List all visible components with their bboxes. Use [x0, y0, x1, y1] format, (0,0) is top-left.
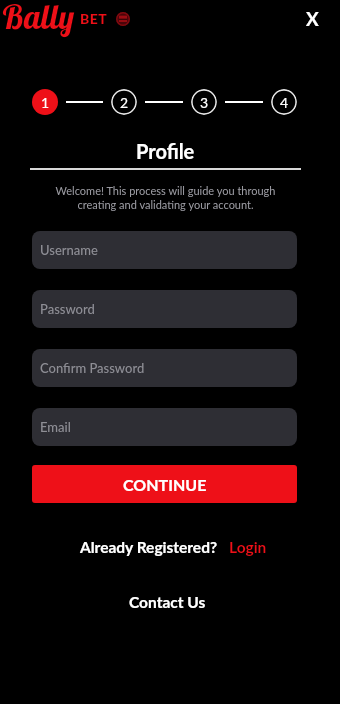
staticText: X — [306, 7, 319, 30]
staticText: Already Registered? — [80, 538, 218, 557]
button[interactable]: Confirm Password — [32, 349, 297, 387]
staticText: 4 — [280, 94, 289, 111]
staticText: Welcome! This process will guide you thr… — [30, 184, 301, 211]
staticText: Email — [40, 419, 71, 435]
staticText: 1 — [41, 94, 50, 111]
button[interactable]: CONTINUE — [32, 465, 297, 503]
staticText: 2 — [120, 94, 129, 111]
button[interactable]: Step 2 — [111, 89, 137, 115]
button[interactable]: Step 3 — [191, 89, 217, 115]
staticText: Bally — [1, 0, 75, 37]
staticText: 3 — [200, 94, 209, 111]
other: 21 plus — [116, 12, 130, 26]
staticText: Profile — [136, 139, 195, 163]
button[interactable]: Username — [32, 231, 297, 269]
staticText: CONTINUE — [123, 475, 207, 494]
button[interactable]: Step 4 — [271, 89, 297, 115]
staticText: Password — [40, 301, 95, 317]
staticText: Username — [40, 242, 98, 258]
staticText: BET — [80, 10, 108, 27]
staticText: Login — [229, 538, 267, 557]
button[interactable]: Contact Us — [129, 593, 206, 612]
button[interactable]: Close — [300, 6, 324, 30]
staticText: Contact Us — [129, 593, 206, 612]
button[interactable]: Email — [32, 408, 297, 446]
staticText: Confirm Password — [40, 360, 145, 376]
button[interactable]: Step 1 — [32, 89, 58, 115]
button[interactable]: Password — [32, 290, 297, 328]
button[interactable]: Login — [229, 538, 267, 557]
